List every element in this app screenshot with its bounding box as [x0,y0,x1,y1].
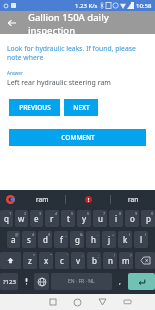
staticText: 9 [135,211,138,216]
staticText: l [140,234,143,245]
button[interactable]: g [70,231,84,248]
button[interactable]: PREVIOUS [9,99,60,116]
button[interactable]: k [118,231,132,248]
button[interactable] [66,190,110,208]
staticText: 5 [71,211,74,216]
staticText: x [44,255,49,266]
staticText: k [123,234,128,245]
staticText: Left rear hydraulic steering ram [7,78,111,88]
button[interactable]: w [15,210,28,227]
button[interactable]: e [30,210,43,227]
staticText: s [27,234,31,245]
staticText: c [60,255,64,266]
staticText: w [18,213,25,224]
staticText: : [82,253,84,258]
staticText: , [119,277,121,287]
staticText: i [115,213,118,224]
button[interactable]: x [39,252,53,269]
staticText: j [108,234,111,245]
button[interactable]: Hide keyboard [115,294,140,310]
button[interactable]: p [141,210,155,227]
staticText: ) [145,232,147,237]
button[interactable]: Home [65,294,90,310]
staticText: m [122,255,130,266]
staticText: 1 [9,211,12,216]
button[interactable]: b [87,252,101,269]
staticText: $ [48,232,51,237]
button[interactable]: NEXT [64,99,98,116]
staticText: @ [15,232,19,237]
staticText: ; [98,253,100,258]
staticText: v [76,255,81,266]
button[interactable]: a [7,231,20,248]
staticText: 3 [39,211,42,216]
button[interactable]: d [38,231,52,248]
staticText: r [50,213,54,224]
button[interactable]: v [71,252,85,269]
button[interactable]: q [0,210,13,227]
button[interactable]: ran [111,190,155,208]
button[interactable]: Recents [40,294,65,310]
staticText: EN · FR · NL [68,278,95,285]
staticText: p [146,213,151,224]
staticText: Gallion 150A daily inspection [28,11,155,34]
staticText: f [60,234,63,245]
button[interactable]: j [102,231,116,248]
staticText: 0 [151,211,154,216]
button[interactable]: , [114,273,126,290]
button[interactable]: z [23,252,37,269]
button[interactable]: Shift [0,252,21,269]
staticText: ?123 [3,278,16,286]
button[interactable]: Google [0,190,20,208]
staticText: d [43,234,48,245]
button[interactable]: Voice input [20,273,32,290]
staticText: 2 [24,211,27,216]
button[interactable]: Backspace [135,252,155,269]
staticText: & [80,232,83,237]
button[interactable]: ?123 [0,273,18,290]
button[interactable]: c [55,252,69,269]
staticText: NEXT [73,103,90,112]
staticText: b [92,255,97,266]
staticText: e [34,213,39,224]
button[interactable]: h [86,231,100,248]
staticText: ! [114,253,116,258]
staticText: PREVIOUS [19,103,51,112]
button[interactable]: u [93,210,107,227]
button[interactable]: o [125,210,139,227]
button[interactable]: Back [0,11,23,34]
staticText: y [82,213,87,224]
staticText: u [98,213,103,224]
staticText: Answer [7,70,23,76]
button[interactable]: s [22,231,36,248]
staticText: 6 [87,211,90,216]
staticText: ran [128,195,139,204]
staticText: h [91,234,96,245]
button[interactable]: Back [90,294,115,310]
staticText: z [28,255,32,266]
button[interactable]: n [103,252,117,269]
button[interactable]: Change language [34,273,49,290]
staticText: COMMENT [61,133,95,142]
staticText: 4 [55,211,58,216]
button[interactable]: i [109,210,123,227]
button[interactable]: ram [20,190,65,208]
staticText: t [67,213,70,224]
staticText: ? [130,253,132,258]
button[interactable]: f [54,231,68,248]
staticText: 10:58 [136,2,152,10]
button[interactable]: l [134,231,148,248]
button[interactable]: m [119,252,133,269]
staticText: # [32,232,35,237]
button[interactable]: COMMENT [9,129,146,146]
button[interactable]: y [77,210,91,227]
staticText: * [33,253,36,258]
staticText: ( [129,232,131,237]
button[interactable]: Enter [128,273,155,290]
button[interactable]: r [45,210,59,227]
button[interactable]: EN · FR · NL [51,273,112,290]
staticText: 7 [103,211,106,216]
staticText: g [75,234,80,245]
button[interactable]: t [61,210,75,227]
staticText: Look for hydraulic leaks. If found, plea… [7,44,148,62]
